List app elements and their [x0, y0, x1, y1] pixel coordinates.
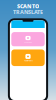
button[interactable]: SCAN CODE [11, 32, 45, 47]
staticText: SCAN CODE [24, 41, 32, 43]
staticText: SCAN TO [17, 3, 39, 10]
button[interactable]: FROM PHOTO [11, 49, 45, 66]
staticText: FROM PHOTO [23, 60, 32, 62]
staticText: TRANSLATE [13, 8, 43, 15]
